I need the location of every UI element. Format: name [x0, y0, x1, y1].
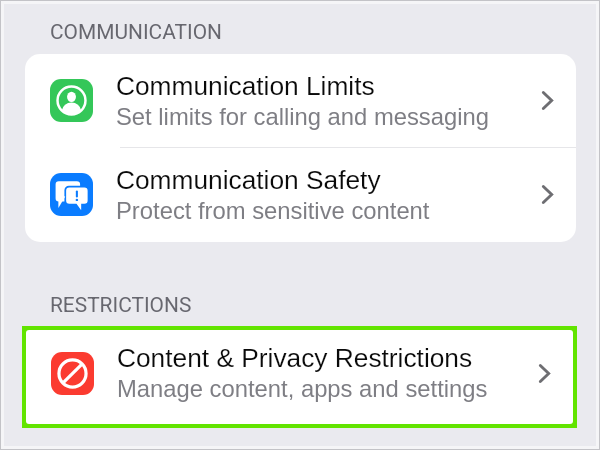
- staticText: Manage content, apps and settings: [117, 375, 488, 402]
- staticText: Set limits for calling and messaging: [116, 103, 489, 130]
- staticText: Protect from sensitive content: [116, 197, 430, 224]
- button[interactable]: Communication safety: [25, 148, 576, 241]
- staticText: RESTRICTIONS: [50, 293, 192, 317]
- other: Content and privacy restrictions: [51, 352, 94, 395]
- other: Communication safety: [50, 173, 93, 216]
- staticText: Communication Limits: [116, 71, 375, 100]
- button[interactable]: Open Content & Privacy Restrictions: [515, 330, 573, 420]
- button[interactable]: Communication limits: [25, 54, 576, 147]
- button[interactable]: Open Communication Limits: [518, 54, 576, 147]
- button[interactable]: Content and privacy restrictions: [26, 330, 573, 423]
- staticText: Communication Safety: [116, 165, 381, 194]
- staticText: Content & Privacy Restrictions: [117, 343, 473, 372]
- button[interactable]: Open Communication Safety: [518, 148, 576, 241]
- other: Communication limits: [50, 79, 93, 122]
- staticText: COMMUNICATION: [50, 20, 222, 44]
